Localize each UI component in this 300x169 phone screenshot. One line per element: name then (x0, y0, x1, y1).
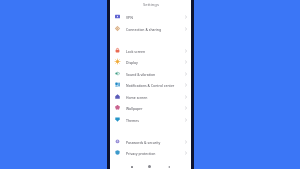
button[interactable]: Display (110, 56, 191, 67)
button[interactable]: Passwords & security (110, 136, 191, 147)
staticText: Settings (143, 2, 159, 8)
button[interactable]: Privacy protection (110, 147, 191, 158)
button[interactable]: Sound & vibration (110, 68, 191, 79)
button[interactable]: VPN (110, 11, 191, 22)
staticText: Passwords & security (126, 140, 161, 145)
staticText: Display (126, 60, 138, 65)
button[interactable]: Notifications & Control center (110, 79, 191, 90)
staticText: Lock screen (126, 49, 146, 54)
staticText: Notifications & Control center (126, 83, 175, 88)
button[interactable]: Connection & sharing (110, 23, 191, 34)
staticText: Connection & sharing (126, 27, 162, 32)
button[interactable]: Lock screen (110, 45, 191, 56)
staticText: Sound & vibration (126, 72, 156, 77)
button[interactable]: Home screen (110, 91, 191, 102)
staticText: Home screen (126, 95, 148, 100)
button[interactable]: Back (165, 163, 172, 169)
staticText: Wallpaper (126, 106, 143, 111)
staticText: Themes (126, 118, 139, 123)
button[interactable]: Recents (128, 163, 135, 169)
button[interactable]: Wallpaper (110, 102, 191, 113)
staticText: VPN (126, 15, 133, 20)
button[interactable]: Themes (110, 114, 191, 125)
button[interactable]: Home (146, 163, 153, 169)
staticText: Privacy protection (126, 151, 156, 156)
